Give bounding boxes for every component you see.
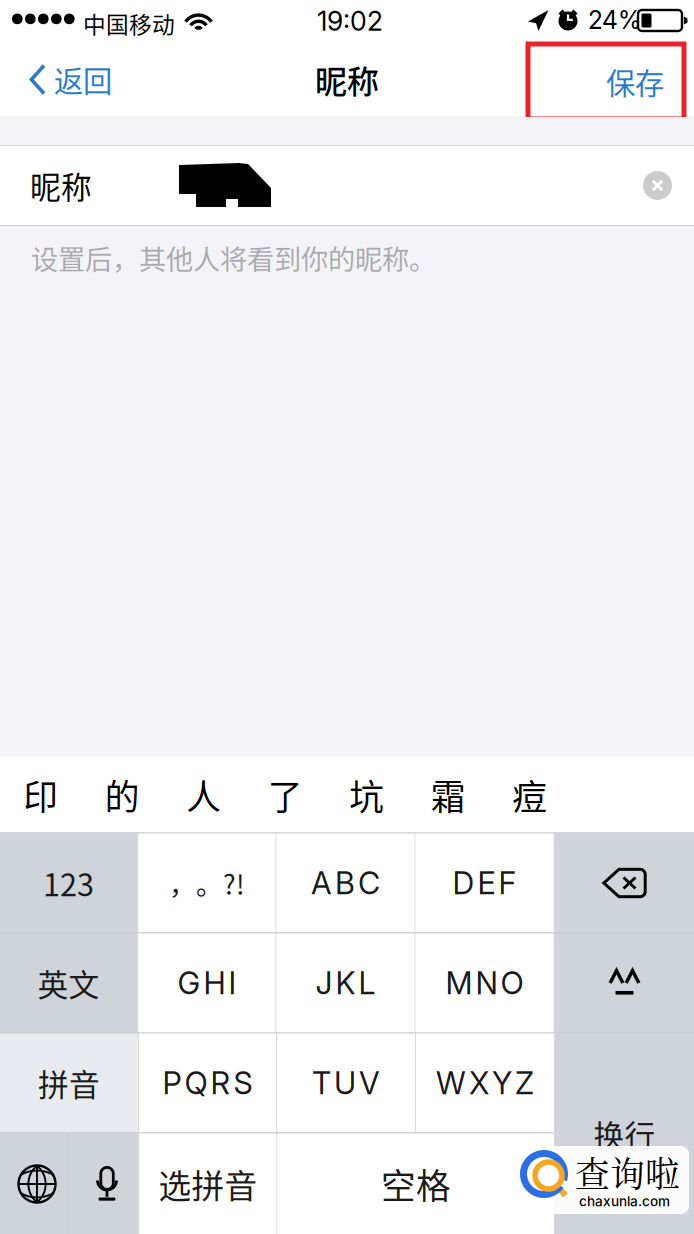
staticText: TUV <box>312 1064 380 1101</box>
button[interactable]: 霜 <box>407 757 489 832</box>
staticText: 昵称 <box>30 163 92 208</box>
staticText: WXYZ <box>436 1064 534 1101</box>
button[interactable]: 123 <box>0 833 137 932</box>
button[interactable]: JKL <box>276 933 414 1032</box>
button[interactable]: MNO <box>415 933 553 1032</box>
staticText: MNO <box>445 964 523 1001</box>
button[interactable]: 选拼音 <box>139 1133 276 1234</box>
button[interactable]: 英文 <box>0 933 137 1032</box>
staticText: 痘 <box>512 770 547 820</box>
button[interactable]: TUV <box>277 1033 415 1132</box>
staticText: 的 <box>105 770 140 820</box>
staticText: 查询啦 <box>575 1147 680 1197</box>
staticText: 印 <box>23 770 58 820</box>
staticText: 返回 <box>54 58 112 101</box>
button[interactable]: 保存 <box>528 44 684 119</box>
staticText: ，。?! <box>169 864 245 902</box>
button[interactable]: WXYZ <box>416 1033 554 1132</box>
button[interactable]: 清除 <box>635 163 680 208</box>
staticText: JKL <box>315 964 375 1001</box>
button[interactable]: ，。?! <box>138 833 275 932</box>
staticText: 了 <box>268 770 303 820</box>
staticText: 英文 <box>37 961 99 1005</box>
button[interactable]: ABC <box>276 833 414 932</box>
staticText: 24% <box>588 5 641 35</box>
staticText: 人 <box>186 770 221 820</box>
button[interactable]: 语音输入 <box>69 1133 138 1234</box>
button[interactable]: 了 <box>244 757 326 832</box>
button[interactable]: 换行 <box>555 1033 694 1234</box>
staticText: 昵称 <box>315 56 379 103</box>
button[interactable]: DEF <box>415 833 553 932</box>
button[interactable]: 的 <box>81 757 163 832</box>
button[interactable]: 空格 <box>277 1133 554 1234</box>
staticText: 设置后，其他人将看到你的昵称。 <box>31 238 436 278</box>
button[interactable]: 切换键盘 <box>0 1133 68 1234</box>
button[interactable]: 痘 <box>489 757 570 832</box>
button[interactable]: 拼音 <box>0 1033 138 1132</box>
staticText: 123 <box>43 861 94 905</box>
button[interactable]: 表情 <box>554 933 694 1032</box>
staticText: 拼音 <box>38 1061 100 1105</box>
staticText: PQRS <box>162 1064 252 1101</box>
staticText: 空格 <box>381 1159 451 1209</box>
button[interactable]: 人 <box>163 757 244 832</box>
staticText: 19:02 <box>317 5 383 37</box>
button[interactable]: 坑 <box>326 757 407 832</box>
button[interactable]: GHI <box>138 933 275 1032</box>
button[interactable]: PQRS <box>139 1033 276 1132</box>
staticText: 坑 <box>349 770 384 820</box>
staticText: 换行 <box>593 1112 655 1156</box>
staticText: chaxunla.com <box>579 1193 670 1209</box>
button[interactable]: 返回 <box>0 43 130 116</box>
staticText: DEF <box>452 864 516 901</box>
staticText: 选拼音 <box>158 1160 257 1208</box>
button[interactable]: 印 <box>0 757 81 832</box>
staticText: 中国移动 <box>83 7 175 40</box>
staticText: 保存 <box>606 60 664 103</box>
staticText: ABC <box>311 864 380 901</box>
button[interactable]: 删除 <box>554 833 694 932</box>
staticText: 霜 <box>431 770 466 820</box>
staticText: GHI <box>177 964 236 1001</box>
